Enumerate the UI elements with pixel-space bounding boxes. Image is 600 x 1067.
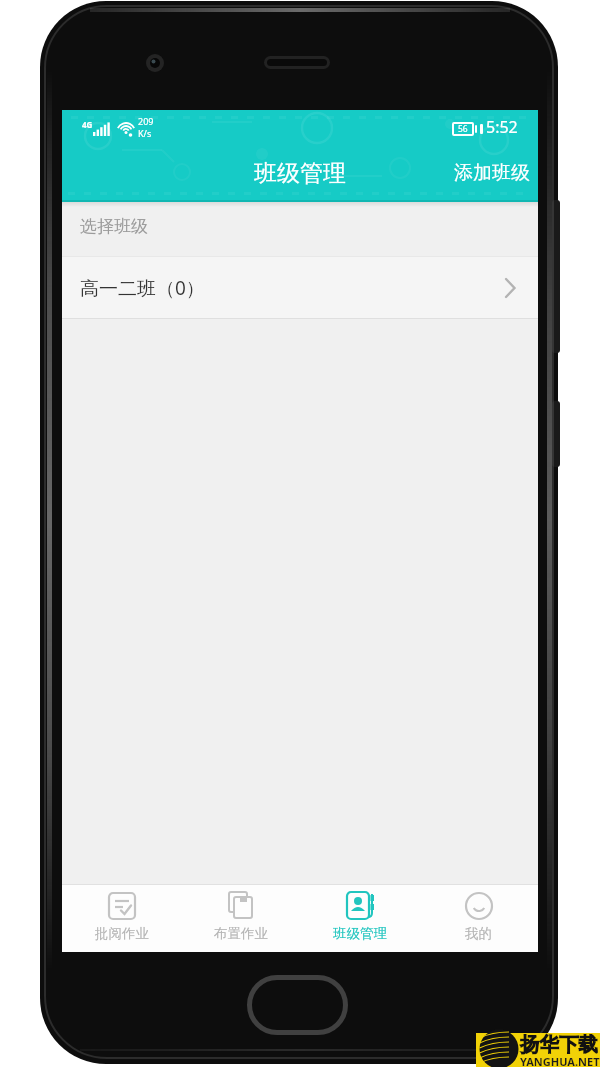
staticText: 4G: [82, 119, 93, 130]
button[interactable]: 批阅作业: [62, 885, 181, 952]
staticText: 班级管理: [254, 159, 346, 188]
staticText: 选择班级: [80, 216, 148, 237]
staticText: 209: [138, 115, 154, 127]
staticText: 添加班级: [454, 161, 530, 185]
staticText: 5:52: [486, 116, 518, 138]
staticText: 布置作业: [214, 925, 268, 942]
button[interactable]: 班级管理: [300, 885, 419, 952]
staticText: K/s: [138, 127, 152, 139]
staticText: YANGHUA.NET: [520, 1054, 600, 1067]
button[interactable]: 添加班级: [454, 158, 538, 188]
button[interactable]: 高一二班（0）: [62, 257, 538, 318]
staticText: 56: [458, 123, 468, 135]
staticText: 班级管理: [333, 925, 387, 942]
button[interactable]: 我的: [419, 885, 538, 952]
staticText: 批阅作业: [95, 925, 149, 942]
staticText: 扬华下载: [520, 1032, 598, 1057]
staticText: 高一二班（0）: [80, 275, 205, 301]
button[interactable]: 布置作业: [181, 885, 300, 952]
staticText: 我的: [465, 925, 492, 942]
